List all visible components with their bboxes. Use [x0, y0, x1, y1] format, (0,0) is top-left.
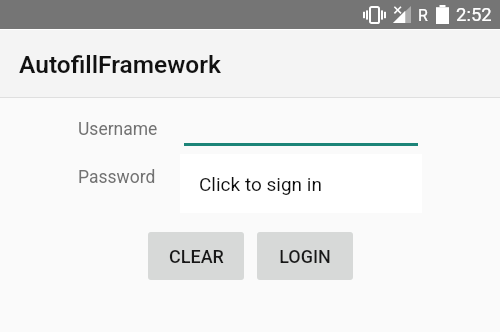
- button[interactable]: LOGIN: [257, 232, 353, 280]
- staticText: Password: [78, 167, 156, 188]
- staticText: AutofillFramework: [19, 50, 221, 79]
- staticText: R: [418, 6, 428, 25]
- staticText: 2:52: [456, 4, 492, 26]
- staticText: LOGIN: [279, 246, 331, 267]
- staticText: Username: [78, 119, 158, 140]
- button[interactable]: CLEAR: [148, 232, 244, 280]
- button[interactable]: Click to sign in: [180, 154, 422, 213]
- staticText: Click to sign in: [199, 173, 322, 195]
- staticText: CLEAR: [169, 246, 224, 267]
